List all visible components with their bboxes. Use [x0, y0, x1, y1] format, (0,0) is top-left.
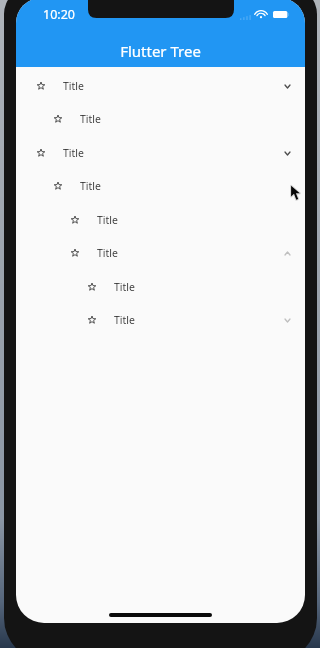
button[interactable]: Title	[16, 136, 305, 169]
button[interactable]: Expand	[279, 245, 295, 261]
staticText: Title	[114, 280, 135, 294]
button[interactable]: Expand	[279, 78, 295, 94]
staticText: Title	[114, 313, 135, 327]
staticText: Title	[80, 179, 101, 193]
button[interactable]: Title	[16, 236, 305, 269]
staticText: Title	[63, 79, 84, 93]
button[interactable]: Title	[16, 169, 305, 202]
button[interactable]: Title	[16, 69, 305, 102]
button[interactable]: Title	[16, 303, 305, 336]
staticText: Title	[63, 146, 84, 160]
button[interactable]: Title	[16, 270, 305, 303]
button[interactable]: Title	[16, 102, 305, 135]
staticText: Title	[80, 112, 101, 126]
button[interactable]: Expand	[279, 145, 295, 161]
button[interactable]: Title	[16, 203, 305, 236]
staticText: Title	[97, 213, 118, 227]
button[interactable]: Expand	[279, 312, 295, 328]
staticText: Flutter Tree	[120, 41, 201, 61]
staticText: Title	[97, 246, 118, 260]
staticText: 10:20	[43, 6, 75, 23]
